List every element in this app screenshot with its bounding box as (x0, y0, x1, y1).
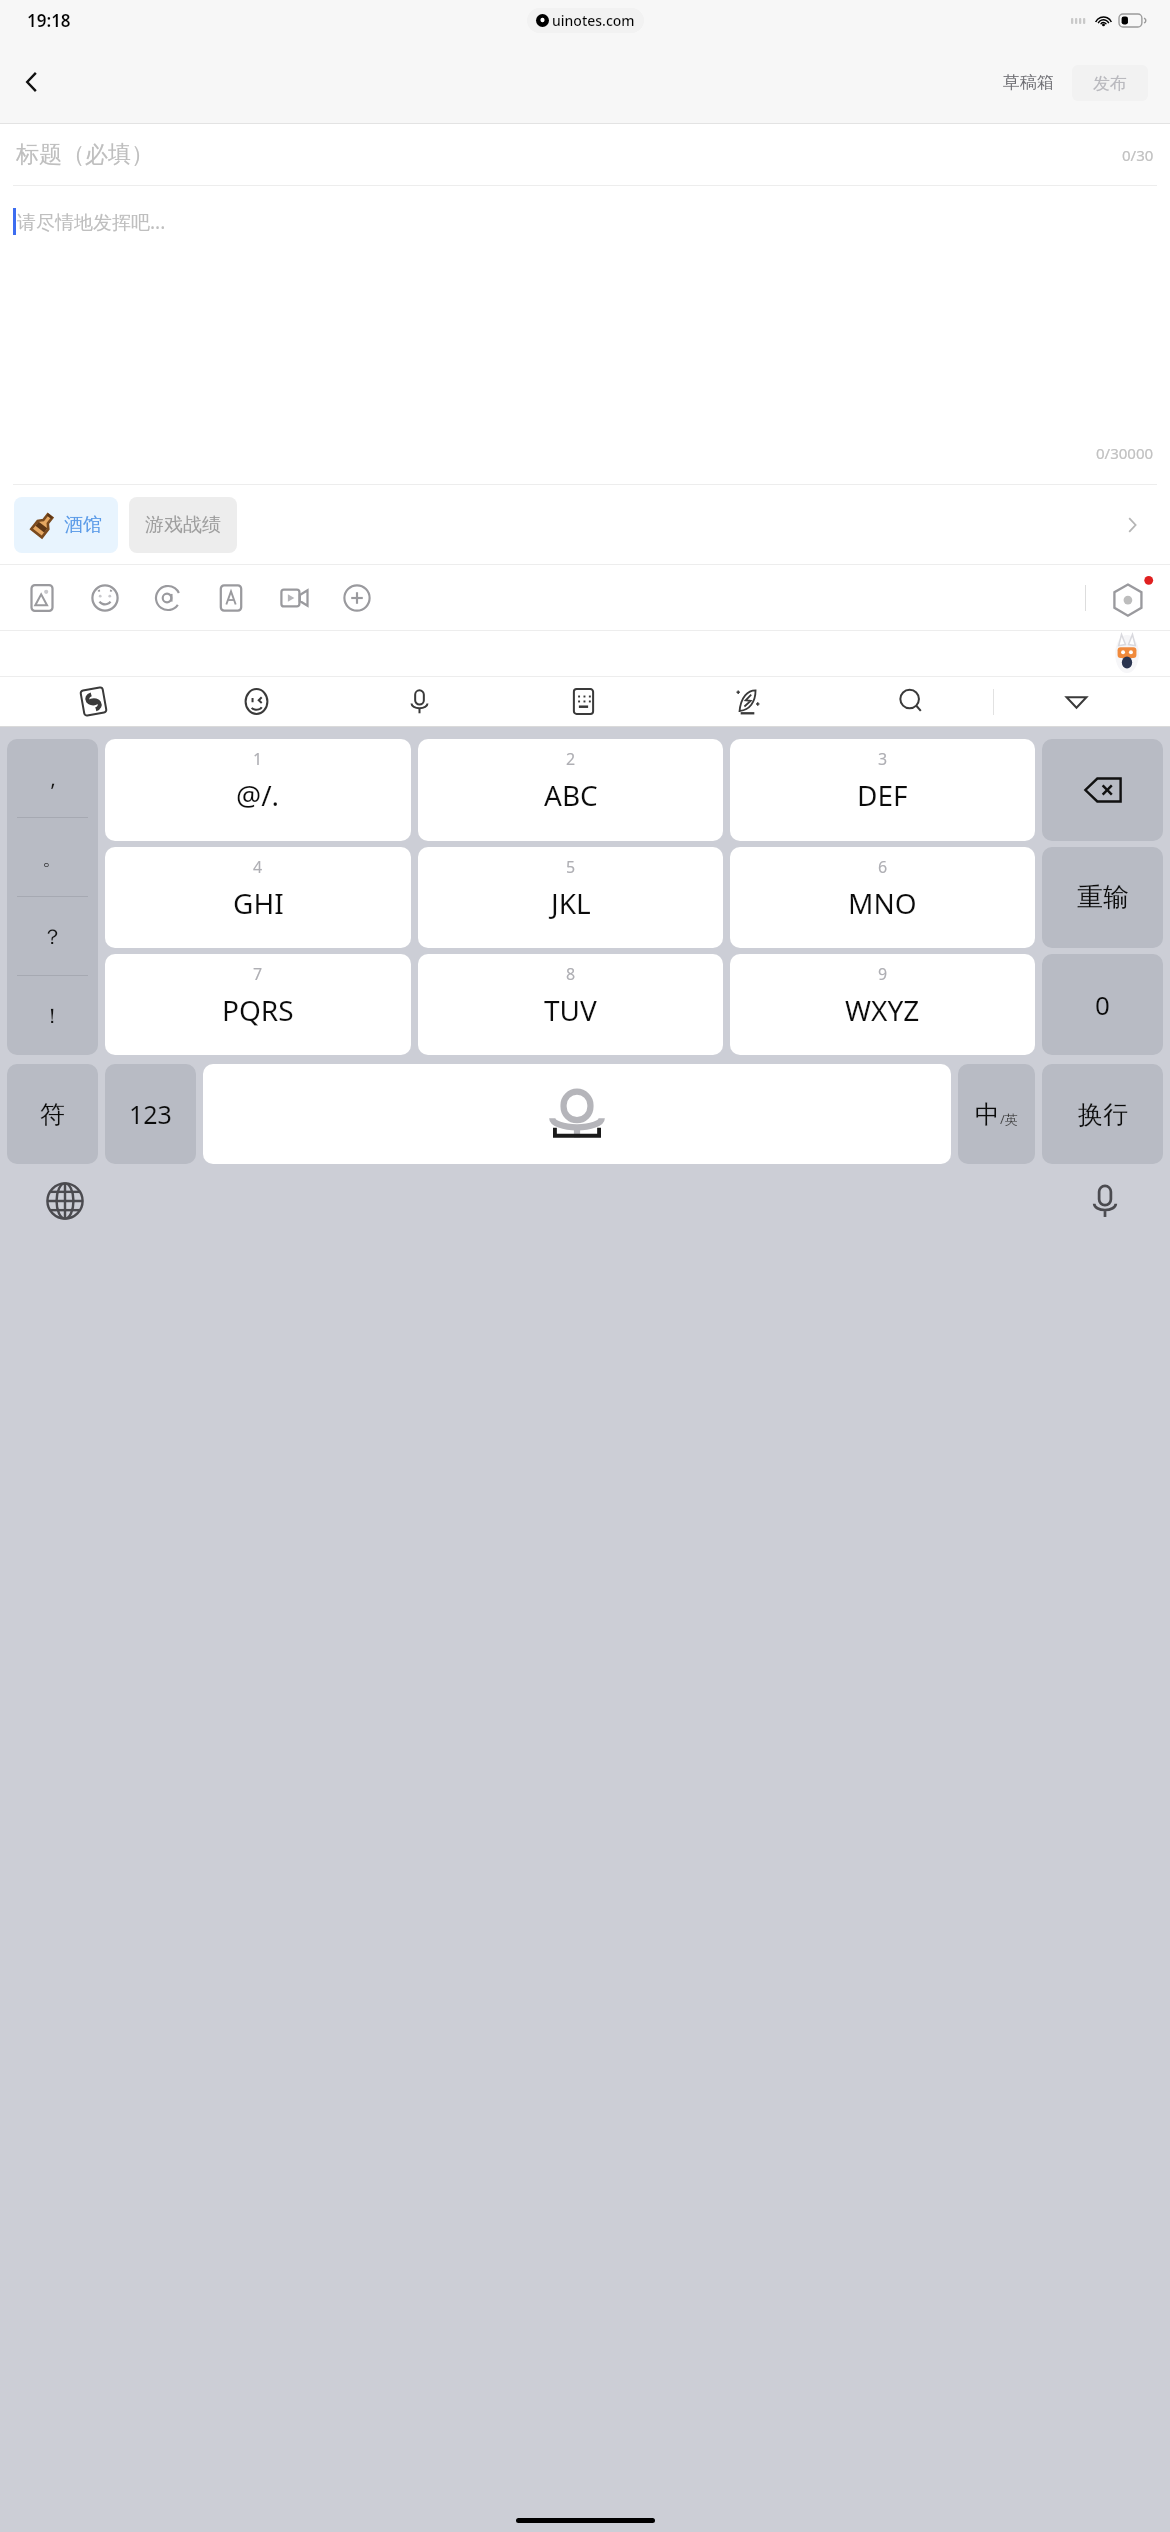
button[interactable]: Sogou input (12, 677, 175, 726)
button[interactable]: 2 (418, 739, 723, 841)
button[interactable]: Change language (36, 1172, 94, 1230)
button[interactable]: Back (8, 58, 56, 106)
staticText: 0 (1095, 987, 1110, 1022)
button[interactable]: Space (203, 1064, 951, 1164)
staticText: PQRS (222, 991, 294, 1029)
button[interactable]: Add image (10, 570, 73, 626)
staticText: 标题（必填） (16, 140, 154, 169)
staticText: 0/30000 (1096, 443, 1154, 463)
button[interactable]: Voice (338, 677, 501, 726)
button[interactable]: Mention (136, 570, 199, 626)
button[interactable]: 草稿箱 (997, 64, 1060, 101)
staticText: 。 (42, 845, 63, 871)
staticText: 重输 (1077, 881, 1129, 914)
staticText: 换行 (1078, 1099, 1128, 1130)
staticText: 符 (40, 1099, 65, 1130)
staticText: , (50, 764, 56, 793)
button[interactable]: Emoji (175, 677, 338, 726)
staticText: 1 (253, 748, 263, 770)
staticText: 19:18 (27, 9, 71, 32)
button[interactable]: 酒馆 (14, 497, 118, 553)
staticText: @/. (236, 776, 280, 814)
button[interactable]: 5 (418, 847, 723, 948)
button[interactable]: 0 (1042, 954, 1163, 1055)
staticText: /英 (1000, 1110, 1018, 1128)
button[interactable]: 4 (105, 847, 411, 948)
button[interactable]: 重输 (1042, 847, 1163, 948)
staticText: 6 (878, 856, 888, 878)
button[interactable]: Avatar (1106, 633, 1148, 675)
button[interactable]: Voice input (1076, 1172, 1134, 1230)
staticText: 7 (253, 963, 263, 985)
button[interactable]: 标题（必填） (0, 124, 1170, 185)
staticText: uinotes.com (552, 11, 635, 30)
staticText: 5 (566, 856, 576, 878)
staticText: 0/30 (1122, 145, 1154, 165)
button[interactable]: 符 (7, 1064, 98, 1164)
button[interactable]: Video (262, 570, 325, 626)
staticText: DEF (857, 776, 908, 814)
button[interactable]: More topics (1112, 505, 1152, 545)
staticText: TUV (544, 991, 597, 1029)
button[interactable]: Chinese English toggle (958, 1064, 1035, 1164)
button[interactable]: AI writing (665, 677, 829, 726)
staticText: WXYZ (845, 991, 920, 1029)
button[interactable]: Keyboard layout (501, 677, 665, 726)
button[interactable]: , (7, 739, 98, 818)
button[interactable]: Text format (199, 570, 262, 626)
staticText: 2 (566, 748, 576, 770)
button[interactable]: 1 (105, 739, 411, 841)
staticText: 123 (129, 1097, 172, 1131)
staticText: 游戏战绩 (145, 513, 221, 537)
staticText: 9 (878, 963, 888, 985)
button[interactable]: 发布 (1072, 65, 1148, 101)
button[interactable]: 123 (105, 1064, 196, 1164)
button[interactable]: ！ (7, 976, 98, 1055)
button[interactable]: 换行 (1042, 1064, 1163, 1164)
staticText: 4 (253, 856, 263, 878)
staticText: JKL (551, 884, 591, 922)
staticText: MNO (848, 884, 917, 922)
staticText: 发布 (1093, 73, 1127, 94)
button[interactable]: 6 (730, 847, 1035, 948)
button[interactable]: More (325, 570, 388, 626)
button[interactable]: 7 (105, 954, 411, 1055)
button[interactable]: 9 (730, 954, 1035, 1055)
button[interactable]: Hide keyboard (994, 677, 1158, 726)
button[interactable]: 请尽情地发挥吧... (0, 186, 1170, 346)
staticText: 中 (975, 1099, 1000, 1130)
staticText: ABC (544, 776, 598, 814)
button[interactable]: ？ (7, 897, 98, 976)
button[interactable]: Emoji (73, 570, 136, 626)
button[interactable]: 游戏战绩 (129, 497, 237, 553)
staticText: ？ (42, 924, 63, 950)
button[interactable]: Backspace (1042, 739, 1163, 841)
staticText: 8 (566, 963, 576, 985)
button[interactable]: 8 (418, 954, 723, 1055)
staticText: 酒馆 (64, 513, 102, 537)
staticText: 3 (878, 748, 888, 770)
staticText: GHI (233, 884, 284, 922)
button[interactable]: Search (829, 677, 993, 726)
staticText: ！ (42, 1003, 63, 1029)
button[interactable]: 3 (730, 739, 1035, 841)
staticText: 草稿箱 (1003, 72, 1054, 93)
staticText: 请尽情地发挥吧... (17, 209, 166, 235)
button[interactable]: 。 (7, 818, 98, 897)
button[interactable]: Record (1104, 572, 1156, 624)
